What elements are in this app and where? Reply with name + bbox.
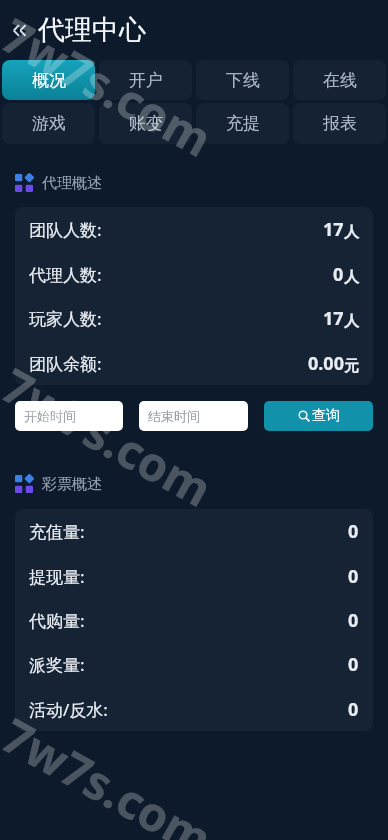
staticText: 下线	[226, 70, 260, 91]
button[interactable]: 充值量:	[29, 509, 359, 554]
staticText: 开始时间	[24, 408, 76, 424]
staticText: 17	[323, 306, 344, 331]
button[interactable]: 团队人数:	[29, 207, 359, 252]
button[interactable]: 玩家人数:	[29, 296, 359, 341]
button[interactable]: 游戏	[2, 103, 95, 144]
staticText: 0	[348, 519, 359, 544]
button[interactable]: 团队余额:	[29, 341, 359, 385]
button[interactable]: 派奖量:	[29, 642, 359, 687]
staticText: 人	[344, 312, 359, 331]
staticText: 账变	[129, 113, 163, 134]
staticText: 人	[344, 223, 359, 242]
staticText: 17	[323, 217, 344, 242]
staticText: 团队余额:	[29, 352, 102, 375]
staticText: 0	[348, 564, 359, 589]
button[interactable]: 开户	[99, 60, 192, 100]
button[interactable]: 充提	[196, 103, 289, 144]
button[interactable]: 账变	[99, 103, 192, 144]
staticText: 0	[333, 262, 344, 287]
staticText: 代理中心	[38, 13, 146, 47]
staticText: 游戏	[32, 113, 66, 134]
staticText: 玩家人数:	[29, 307, 102, 330]
staticText: 结束时间	[148, 408, 200, 424]
staticText: 报表	[323, 113, 357, 134]
staticText: 元	[344, 357, 359, 376]
button[interactable]: 结束时间	[139, 401, 248, 431]
staticText: 人	[344, 268, 359, 287]
staticText: 0.00	[308, 351, 344, 376]
button[interactable]: 概况	[2, 60, 95, 100]
button[interactable]: 活动/反水:	[29, 687, 359, 731]
staticText: 代购量:	[29, 609, 85, 632]
staticText: 团队人数:	[29, 218, 102, 241]
staticText: 概况	[32, 70, 66, 91]
staticText: 代理概述	[42, 174, 102, 193]
staticText: 开户	[129, 70, 163, 91]
staticText: 充值量:	[29, 520, 85, 543]
staticText: 7w7s.com	[0, 3, 224, 171]
staticText: 代理人数:	[29, 263, 102, 286]
staticText: 在线	[323, 70, 357, 91]
button[interactable]: 代理人数:	[29, 252, 359, 296]
staticText: 0	[348, 652, 359, 677]
staticText: 7w7s.com	[0, 703, 224, 840]
button[interactable]: 在线	[293, 60, 386, 100]
button[interactable]: 开始时间	[15, 401, 123, 431]
button[interactable]: 报表	[293, 103, 386, 144]
staticText: 0	[348, 608, 359, 633]
staticText: 提现量:	[29, 565, 85, 588]
staticText: 查询	[312, 407, 340, 425]
staticText: 7w7s.com	[0, 353, 224, 521]
staticText: 0	[348, 697, 359, 722]
button[interactable]: 下线	[196, 60, 289, 100]
staticText: 活动/反水:	[29, 698, 108, 721]
staticText: 彩票概述	[42, 475, 102, 494]
button[interactable]: 查询	[264, 401, 373, 431]
button[interactable]: Back	[0, 8, 38, 52]
staticText: 派奖量:	[29, 653, 85, 676]
staticText: 充提	[226, 113, 260, 134]
button[interactable]: 提现量:	[29, 554, 359, 598]
button[interactable]: 代购量:	[29, 598, 359, 642]
